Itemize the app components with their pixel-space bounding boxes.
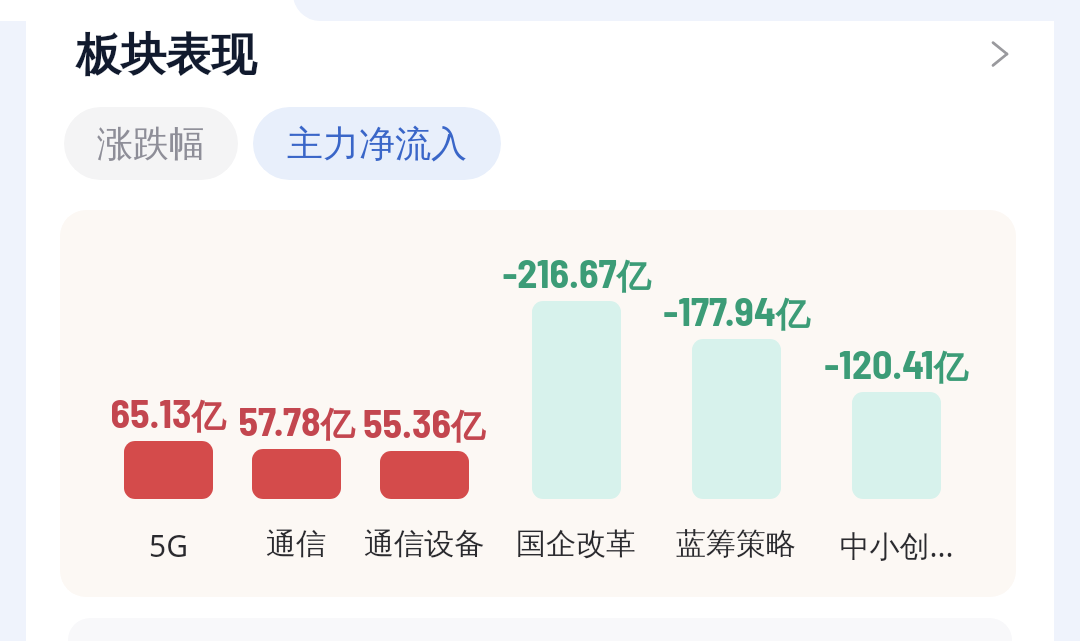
button[interactable] [92,232,244,572]
staticText: 板块表现 [76,27,256,84]
staticText: 65.13亿 [110,388,226,438]
staticText: 55.36亿 [363,398,485,448]
staticText: 主力净流入 [287,121,467,166]
button[interactable] [660,232,812,572]
staticText: 通信设备 [364,525,484,563]
staticText: 5G [149,525,188,566]
staticText: -216.67亿 [502,248,651,298]
button[interactable] [220,232,372,572]
button[interactable]: More sector performance [966,20,1034,88]
button[interactable]: 板块表现 [66,21,266,90]
staticText: -120.41亿 [824,339,968,389]
staticText: 通信 [266,525,326,563]
staticText: 国企改革 [516,525,636,563]
button[interactable]: 涨跌幅 [64,107,238,180]
button[interactable] [500,232,652,572]
staticText: 蓝筹策略 [676,525,796,563]
button[interactable]: 主力净流入 [253,107,501,180]
button[interactable] [348,232,500,572]
staticText: 中小创... [839,525,954,566]
staticText: 涨跌幅 [97,121,205,166]
button[interactable] [820,232,972,572]
staticText: 57.78亿 [238,396,355,446]
staticText: -177.94亿 [663,286,810,336]
